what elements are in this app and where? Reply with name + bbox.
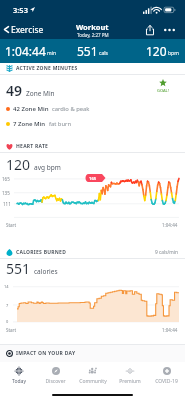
staticText: 7 <box>6 303 9 308</box>
staticText: CALORIES BURNED <box>16 249 67 256</box>
staticText: 7 Zone Min <box>13 120 46 128</box>
staticText: 120 <box>6 155 31 174</box>
staticText: IMPACT ON YOUR DAY <box>16 350 76 357</box>
staticText: min <box>47 50 57 57</box>
staticText: Exercise <box>11 24 44 36</box>
staticText: 0 <box>6 319 9 324</box>
button[interactable]: Today <box>0 362 37 389</box>
staticText: HEART RATE <box>16 143 49 150</box>
staticText: 135 <box>2 190 10 196</box>
staticText: Start <box>6 222 17 228</box>
staticText: 165 <box>2 176 10 182</box>
staticText: 111 <box>3 201 11 207</box>
staticText: Today <box>12 378 26 385</box>
staticText: 1:04:44 <box>5 43 46 59</box>
staticText: GOAL! <box>157 88 169 93</box>
staticText: fat burn <box>49 120 71 128</box>
staticText: cardio & peak <box>52 105 90 113</box>
staticText: 1:04:44 <box>162 327 178 333</box>
staticText: 1:04:44 <box>162 222 178 228</box>
staticText: 120 <box>146 43 167 59</box>
button[interactable]: Community <box>74 362 111 389</box>
staticText: avg bpm <box>34 163 61 172</box>
button[interactable]: COVID-19 <box>148 362 185 389</box>
staticText: COVID-19 <box>155 378 178 385</box>
staticText: bpm <box>168 50 179 57</box>
button[interactable]: Discover <box>37 362 74 389</box>
staticText: Premium <box>119 378 141 385</box>
staticText: 9 cals/min <box>155 249 178 256</box>
staticText: 165 <box>89 176 97 182</box>
staticText: Discover <box>45 378 66 385</box>
staticText: Zone Min <box>26 89 55 98</box>
staticText: calories <box>34 267 58 276</box>
staticText: 551 <box>77 43 98 59</box>
staticText: Start <box>6 327 17 333</box>
staticText: Workout <box>76 22 109 32</box>
staticText: 3:53 <box>13 5 28 15</box>
button[interactable]: More options <box>160 21 178 39</box>
button[interactable]: Exercise <box>0 19 48 40</box>
staticText: ACTIVE ZONE MINUTES <box>16 65 78 72</box>
staticText: 49 <box>6 81 23 100</box>
button[interactable]: Premium <box>111 362 148 389</box>
button[interactable]: Share <box>140 21 160 39</box>
staticText: Community <box>79 378 107 385</box>
staticText: cals <box>99 50 108 57</box>
staticText: 551 <box>6 259 31 278</box>
staticText: 14 <box>4 284 9 289</box>
staticText: 42 Zone Min <box>13 105 49 113</box>
staticText: Today, 2:27 PM <box>77 32 109 38</box>
